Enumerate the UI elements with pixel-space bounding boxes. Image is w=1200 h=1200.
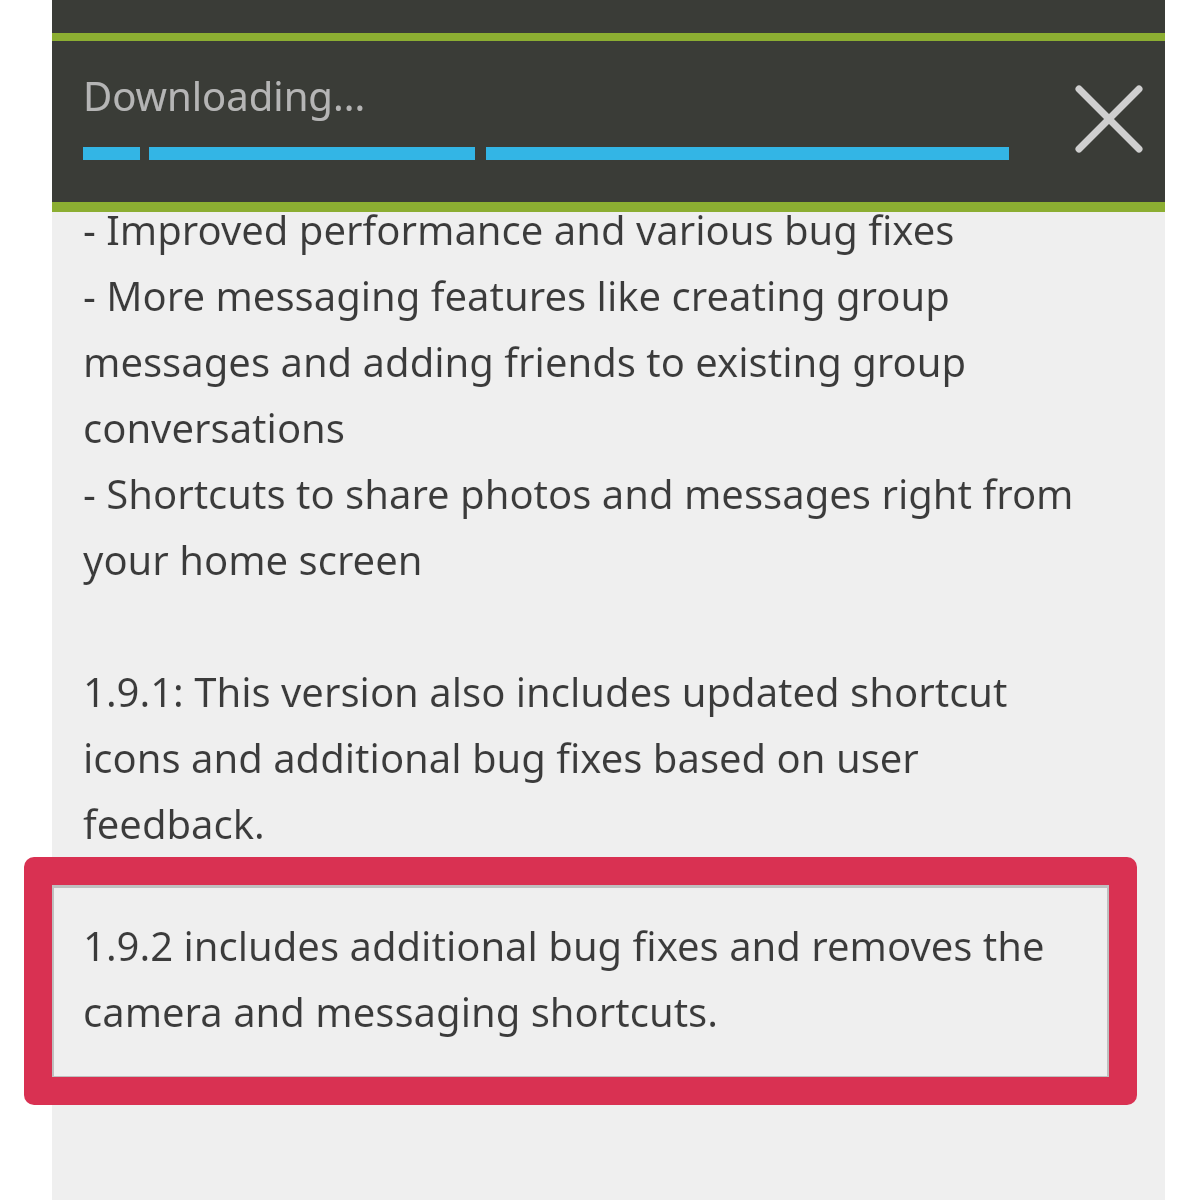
staticText: Downloading... <box>83 68 366 122</box>
staticText: - More messaging features like creating … <box>83 268 950 322</box>
staticText: feedback. <box>83 796 265 850</box>
staticText: 1.9.1: This version also includes update… <box>83 664 1008 718</box>
button[interactable]: Cancel download <box>1053 63 1165 175</box>
staticText: conversations <box>83 400 345 454</box>
staticText: your home screen <box>83 532 423 586</box>
staticText: - Improved performance and various bug f… <box>83 202 955 256</box>
staticText: icons and additional bug fixes based on … <box>83 730 919 784</box>
button[interactable]: 1.9.2 includes additional bug fixes and … <box>24 857 1137 1105</box>
staticText: - Shortcuts to share photos and messages… <box>83 466 1074 520</box>
staticText: messages and adding friends to existing … <box>83 334 967 388</box>
staticText: 1.9.2 includes additional bug fixes and … <box>83 918 1045 972</box>
staticText: camera and messaging shortcuts. <box>83 984 718 1038</box>
